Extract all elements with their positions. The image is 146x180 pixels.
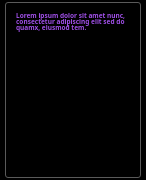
staticText: Lorem ipsum dolor sit amet nunc, consect…	[16, 11, 130, 32]
